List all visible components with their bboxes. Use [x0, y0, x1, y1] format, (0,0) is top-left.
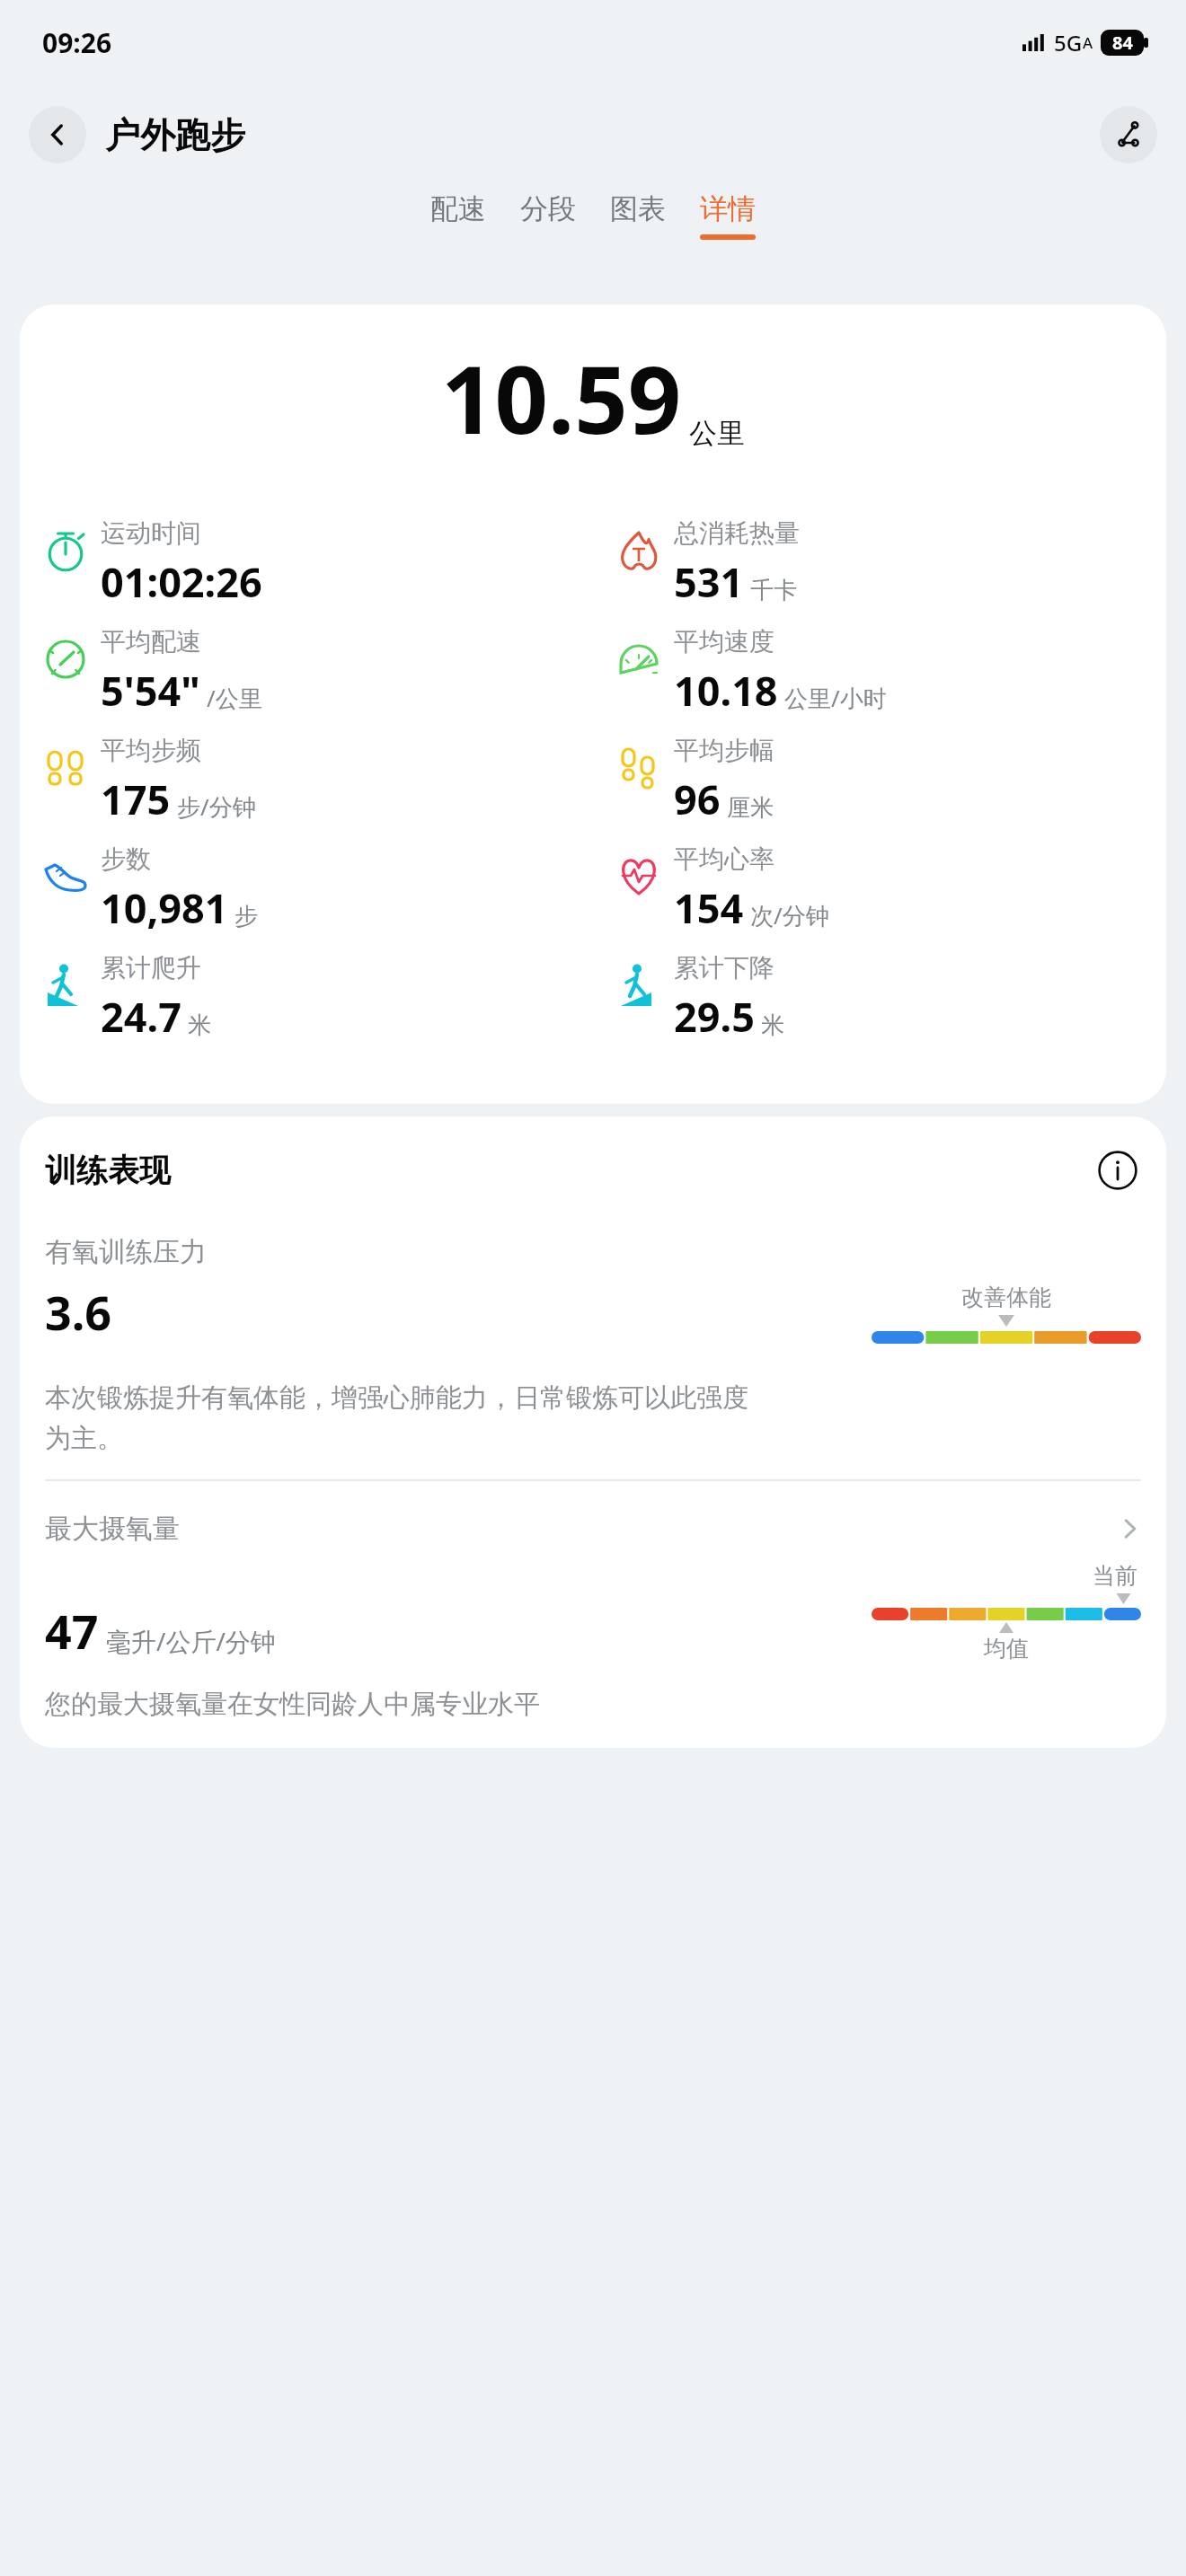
staticText: 47	[45, 1599, 99, 1663]
staticText: 均值	[984, 1635, 1029, 1663]
staticText: 步	[235, 902, 258, 931]
staticText: 24.7	[101, 989, 181, 1044]
staticText: 次/分钟	[750, 899, 829, 931]
staticText: 175	[101, 772, 171, 826]
staticText: 公里/小时	[784, 682, 887, 714]
button[interactable]: 运动时间	[20, 510, 593, 619]
staticText: 96	[674, 772, 721, 826]
staticText: 毫升/公斤/分钟	[106, 1624, 276, 1658]
staticText: 09:26	[42, 24, 112, 61]
staticText: 配速	[430, 191, 486, 226]
staticText: 平均步幅	[674, 735, 774, 766]
staticText: 平均配速	[101, 626, 201, 657]
button[interactable]: 最大摄氧量	[45, 1512, 1141, 1546]
staticText: 训练表现	[45, 1151, 171, 1190]
staticText: 累计爬升	[101, 952, 201, 984]
staticText: 平均速度	[674, 626, 774, 657]
button[interactable]: 平均步频	[20, 728, 593, 836]
staticText: 本次锻炼提升有氧体能，增强心肺能力，日常锻炼可以此强度 为主。	[45, 1381, 748, 1454]
staticText: 10,981	[101, 880, 228, 935]
button[interactable]: 平均心率	[593, 836, 1166, 945]
staticText: 步/分钟	[177, 790, 256, 823]
staticText: 公里	[689, 416, 745, 451]
staticText: 154	[674, 880, 744, 935]
staticText: 29.5	[674, 989, 755, 1044]
staticText: 总消耗热量	[674, 517, 800, 549]
button[interactable]: 分享	[1100, 106, 1157, 163]
staticText: 平均心率	[674, 843, 774, 875]
button[interactable]: 总消耗热量	[593, 510, 1166, 619]
staticText: 10.59	[441, 334, 682, 462]
staticText: 米	[761, 1010, 784, 1040]
button[interactable]: 分段	[503, 184, 593, 247]
staticText: 您的最大摄氧量在女性同龄人中属专业水平	[45, 1688, 540, 1721]
button[interactable]: 说明	[1094, 1147, 1141, 1194]
button[interactable]: 配速	[413, 184, 503, 247]
staticText: 5'54"	[101, 663, 200, 718]
staticText: 531	[674, 554, 744, 609]
staticText: /公里	[207, 682, 262, 714]
button[interactable]: 累计爬升	[20, 945, 593, 1054]
staticText: 平均步频	[101, 735, 201, 766]
staticText: 户外跑步	[105, 113, 245, 157]
staticText: 有氧训练压力	[45, 1235, 207, 1269]
staticText: 图表	[610, 191, 666, 226]
staticText: 5G	[1054, 28, 1083, 57]
button[interactable]: 返回	[29, 106, 86, 163]
staticText: A	[1083, 32, 1093, 53]
staticText: 详情	[700, 191, 756, 226]
staticText: 10.18	[674, 663, 778, 718]
staticText: 改善体能	[961, 1284, 1051, 1311]
button[interactable]: 平均步幅	[593, 728, 1166, 836]
button[interactable]: 图表	[593, 184, 683, 247]
staticText: 最大摄氧量	[45, 1512, 180, 1546]
staticText: 3.6	[45, 1280, 112, 1344]
button[interactable]: 平均配速	[20, 619, 593, 728]
button[interactable]: 累计下降	[593, 945, 1166, 1054]
staticText: 步数	[101, 843, 151, 875]
staticText: 米	[188, 1010, 211, 1040]
button[interactable]: 步数	[20, 836, 593, 945]
staticText: 千卡	[750, 576, 797, 605]
staticText: 01:02:26	[101, 554, 262, 609]
button[interactable]: 详情	[683, 184, 773, 247]
staticText: 运动时间	[101, 517, 201, 549]
staticText: 当前	[1093, 1562, 1137, 1590]
staticText: 厘米	[727, 793, 774, 823]
button[interactable]: 平均速度	[593, 619, 1166, 728]
staticText: 84	[1112, 31, 1133, 55]
staticText: 累计下降	[674, 952, 774, 984]
staticText: 分段	[520, 191, 576, 226]
